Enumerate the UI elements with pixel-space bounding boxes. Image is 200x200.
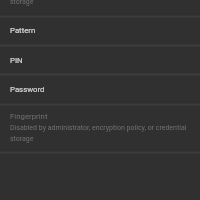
button[interactable]: Fingerprint [0,105,200,152]
button[interactable]: Password [0,75,200,104]
staticText: PIN [10,56,23,65]
button[interactable]: storage [0,0,200,16]
button[interactable]: PIN [0,46,200,74]
staticText: storage [10,0,34,6]
staticText: Fingerprint [10,112,48,121]
button[interactable]: Pattern [0,17,200,45]
staticText: Password [10,85,45,94]
staticText: Disabled by administrator, encryption po… [10,124,200,143]
staticText: Pattern [10,26,36,35]
